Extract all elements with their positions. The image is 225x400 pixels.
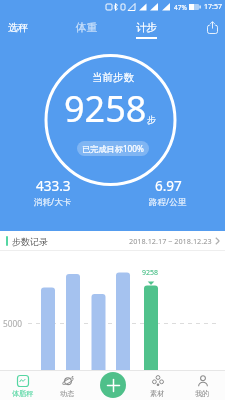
button[interactable]: 计步 — [136, 14, 157, 39]
button[interactable]: 素材 — [135, 370, 180, 400]
button[interactable]: 动态 — [45, 370, 90, 400]
button[interactable] — [100, 372, 126, 398]
staticText: 选秤 — [8, 21, 28, 34]
staticText: 体脂秤 — [12, 389, 34, 398]
staticText: 当前步数 — [92, 71, 134, 84]
staticText: 步 — [147, 114, 156, 125]
staticText: 9258 — [142, 268, 159, 278]
staticText: 47% — [174, 3, 187, 12]
staticText: 消耗/大卡 — [34, 196, 72, 208]
staticText: 体重 — [76, 21, 97, 34]
staticText: 我的 — [195, 389, 210, 398]
staticText: 动态 — [60, 389, 75, 398]
staticText: 已完成目标100% — [82, 143, 144, 154]
staticText: 9258 — [64, 84, 147, 133]
staticText: 素材 — [150, 389, 165, 398]
button[interactable]: 选秤 — [8, 21, 28, 34]
staticText: 5000 — [3, 318, 22, 329]
staticText: 计步 — [136, 21, 157, 34]
button[interactable]: 体重 — [76, 14, 97, 34]
button[interactable]: 2018.12.17 ~ 2018.12.23 — [129, 236, 220, 246]
staticText: 6.97 — [155, 177, 182, 195]
staticText: 步数记录 — [12, 236, 48, 247]
button[interactable]: 体脂秤 — [0, 370, 45, 400]
staticText: 路程/公里 — [149, 196, 187, 208]
staticText: 2018.12.17 ~ 2018.12.23 — [129, 236, 212, 246]
staticText: 433.3 — [36, 177, 71, 195]
staticText: 17:57 — [204, 2, 222, 12]
button[interactable] — [206, 21, 219, 34]
button[interactable]: 我的 — [180, 370, 225, 400]
